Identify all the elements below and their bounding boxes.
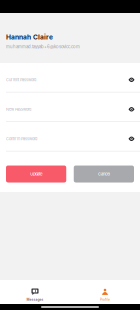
staticText: Cancel [98, 172, 110, 176]
button[interactable]: Show New Password [125, 104, 137, 115]
button[interactable]: Update [6, 165, 66, 182]
button[interactable]: Profile [70, 280, 140, 304]
staticText: muhammad.tayyab+6@kosovicc.com [6, 44, 80, 49]
staticText: Update [30, 172, 42, 176]
staticText: Hannah Claire [6, 33, 53, 41]
button[interactable]: Messages [0, 280, 70, 304]
staticText: Current Password [6, 77, 36, 82]
button[interactable]: Show Confirm Password [125, 133, 137, 144]
staticText: Profile [100, 297, 110, 301]
staticText: Messages [26, 297, 43, 301]
staticText: Confirm Password [6, 136, 37, 141]
staticText: New Password [6, 107, 31, 112]
button[interactable]: Cancel [74, 165, 134, 182]
button[interactable]: Show Current Password [125, 74, 137, 85]
